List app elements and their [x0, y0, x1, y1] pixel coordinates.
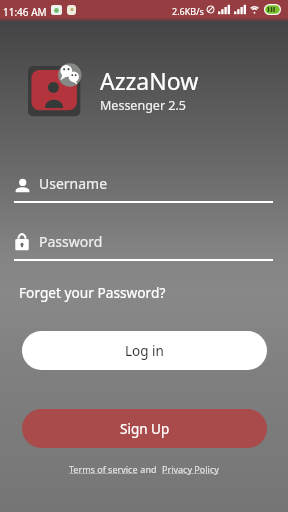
button[interactable]: Log in — [22, 331, 267, 370]
staticText: 11:46 AM — [3, 5, 47, 19]
staticText: and — [138, 463, 162, 475]
staticText: Log in — [125, 342, 164, 360]
button[interactable]: Forget your Password? — [19, 283, 166, 302]
staticText: Username — [39, 174, 108, 193]
button[interactable]: Sign Up — [22, 409, 267, 448]
staticText: 2.6KB/s — [172, 5, 204, 17]
staticText: Messenger 2.5 — [100, 97, 186, 114]
staticText: Password — [39, 232, 103, 251]
staticText: Forget your Password? — [19, 283, 166, 302]
button[interactable]: Privacy Policy — [162, 463, 219, 475]
staticText: Sign Up — [120, 420, 170, 438]
staticText: AzzaNow — [100, 65, 199, 96]
button[interactable]: Terms of service — [69, 463, 138, 475]
